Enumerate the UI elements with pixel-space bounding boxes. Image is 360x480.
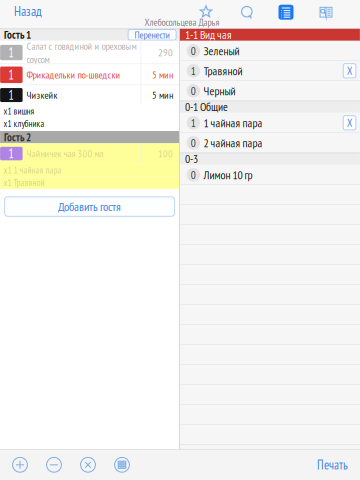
staticText: 1 xyxy=(8,87,14,103)
button[interactable]: 0 xyxy=(180,41,360,61)
staticText: x1 клубника xyxy=(4,118,45,129)
button[interactable]: Перенести xyxy=(128,29,179,40)
staticText: 0 xyxy=(191,84,196,98)
staticText: x1 1 чайная пара xyxy=(4,164,62,176)
staticText: Назад xyxy=(14,3,42,20)
staticText: X xyxy=(347,116,352,130)
staticText: 1 чайная пара xyxy=(203,115,262,130)
button[interactable]: Добавить гостя xyxy=(5,197,175,216)
staticText: Черный xyxy=(203,83,235,98)
staticText: 290 xyxy=(158,46,173,59)
staticText: Гость 2 xyxy=(4,130,31,144)
staticText: 1 xyxy=(8,67,14,83)
button[interactable]: 0 xyxy=(180,133,360,153)
button[interactable]: Заказ xyxy=(275,2,297,22)
button[interactable]: 1 xyxy=(0,143,179,164)
staticText: 0 xyxy=(191,168,196,182)
staticText: x1 Травяной xyxy=(4,177,45,188)
button[interactable]: 0 xyxy=(180,165,360,185)
staticText: 1-1 Вид чая xyxy=(185,27,231,42)
button[interactable]: 0 xyxy=(180,81,360,101)
button[interactable]: Комментарий xyxy=(236,2,258,22)
staticText: Перенести xyxy=(135,28,170,41)
button[interactable]: 1 xyxy=(180,61,360,81)
staticText: 2 чайная пара xyxy=(203,135,262,150)
staticText: 0-1 Общие xyxy=(185,99,228,114)
button[interactable]: 1 xyxy=(0,41,179,64)
button[interactable]: Убрать xyxy=(37,450,71,480)
staticText: 0 xyxy=(191,136,196,150)
button[interactable]: Клавиатура xyxy=(105,450,139,480)
staticText: Чизкейк xyxy=(27,88,58,102)
staticText: Лимон 10 гр xyxy=(203,167,252,182)
button[interactable]: Отменить xyxy=(71,450,105,480)
staticText: x1 вишня xyxy=(4,105,35,117)
staticText: 0 xyxy=(191,44,196,58)
staticText: 1 xyxy=(8,145,14,162)
button[interactable]: 1 xyxy=(0,85,179,105)
staticText: Печать xyxy=(317,457,348,473)
staticText: 5 мин xyxy=(152,68,173,81)
button[interactable]: Меню xyxy=(315,2,337,22)
button[interactable]: 1 xyxy=(180,113,360,133)
staticText: Травяной xyxy=(203,63,242,78)
staticText: Фрикадельки по-шведски xyxy=(27,68,121,81)
staticText: 1 xyxy=(191,64,196,78)
staticText: X xyxy=(347,64,352,78)
staticText: Добавить гостя xyxy=(58,199,121,214)
staticText: 1 xyxy=(191,116,196,130)
staticText: 100 xyxy=(158,147,173,160)
staticText: Салат с говядиной и ореховым соусом xyxy=(27,39,137,66)
staticText: Чайничек чая 300 мл xyxy=(27,147,104,160)
button[interactable]: Добавить xyxy=(3,450,37,480)
staticText: Хлебосольцева Дарья xyxy=(144,16,219,29)
button[interactable]: Назад xyxy=(5,1,51,21)
staticText: Зеленый xyxy=(203,43,239,58)
staticText: 0-3 xyxy=(185,151,198,166)
button[interactable]: Печать xyxy=(317,450,360,480)
staticText: Гость 1 xyxy=(4,28,31,42)
staticText: 5 мин xyxy=(152,88,173,102)
button[interactable]: Избранное xyxy=(195,2,217,22)
button[interactable]: 1 xyxy=(0,64,179,85)
staticText: 1 xyxy=(8,44,14,61)
